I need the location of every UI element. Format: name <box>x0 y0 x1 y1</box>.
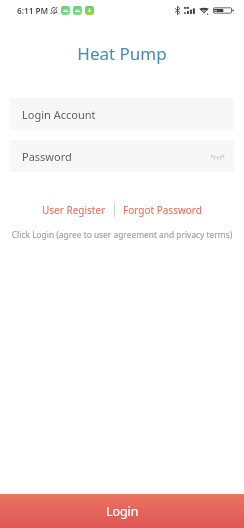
staticText: User Register <box>42 203 106 217</box>
staticText: Forgot Password <box>123 203 202 217</box>
staticText: 6:11 PM <box>17 5 49 16</box>
button[interactable]: Password <box>10 140 234 172</box>
staticText: Login <box>106 503 139 520</box>
staticText: Login Account <box>22 107 96 122</box>
staticText: Click Login (agree to user agreement and… <box>0 229 244 240</box>
staticText: Password <box>22 149 72 164</box>
button[interactable]: Login <box>0 494 244 528</box>
button[interactable]: User Register <box>39 201 109 219</box>
button[interactable]: Show password <box>207 145 227 167</box>
button[interactable]: Forgot Password <box>120 201 205 219</box>
staticText: Heat Pump <box>0 42 244 65</box>
button[interactable]: Login Account <box>10 98 234 130</box>
